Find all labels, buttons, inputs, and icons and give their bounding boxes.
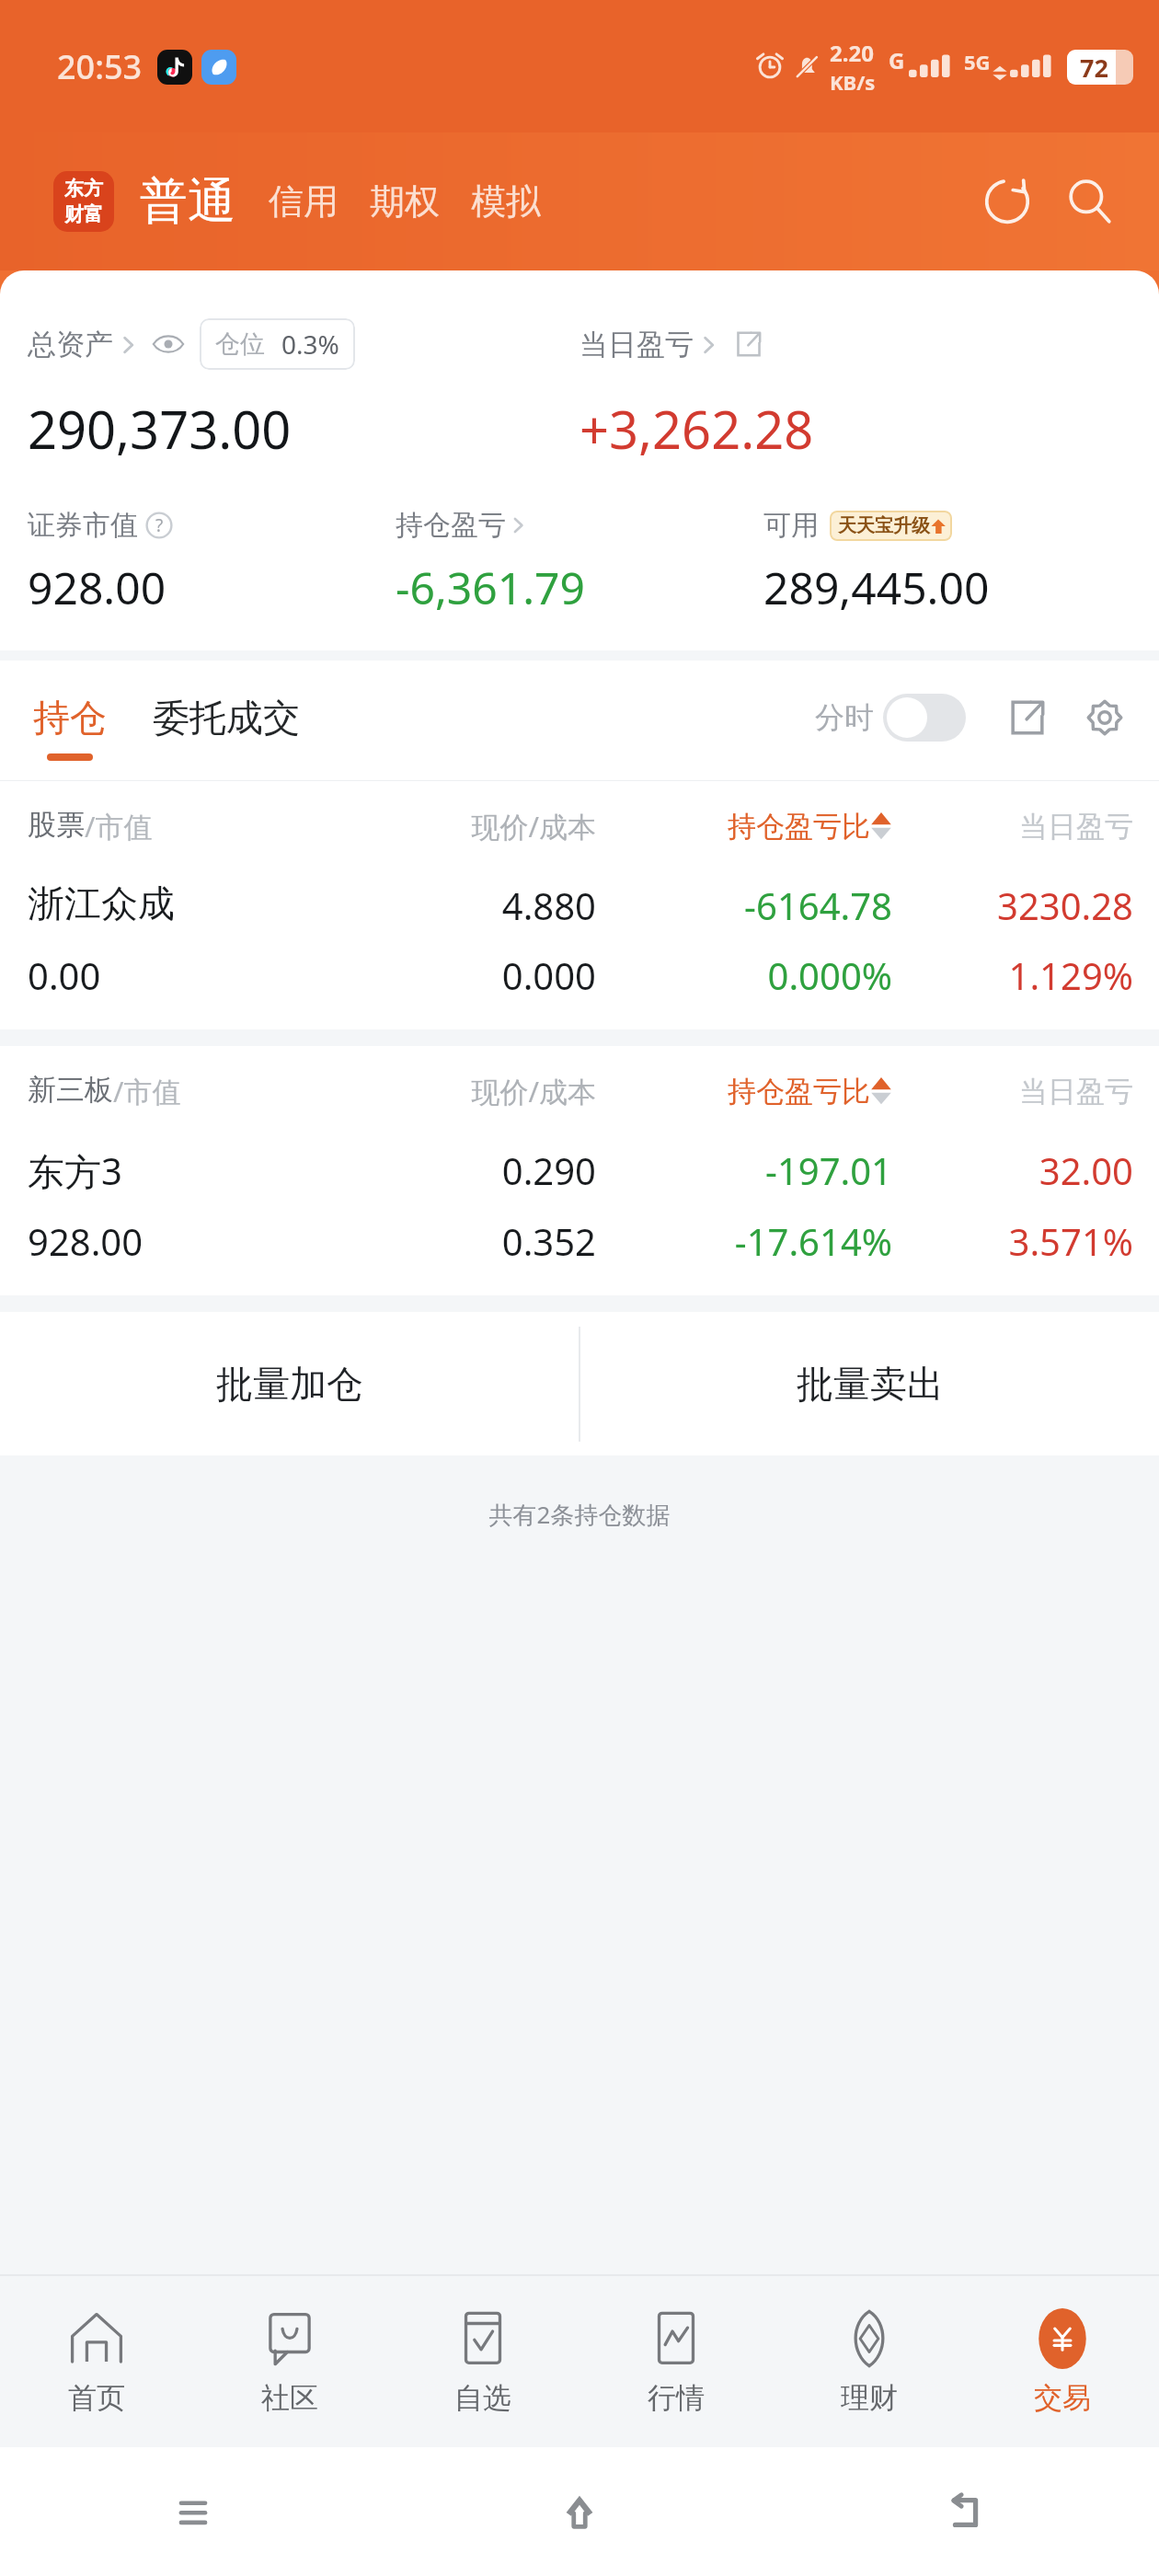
staticText: G — [889, 45, 905, 75]
button[interactable]: 新三板 — [0, 1046, 1159, 1295]
staticText: -6,361.79 — [396, 558, 763, 617]
staticText: 0.290 — [336, 1145, 596, 1195]
button[interactable]: Export — [999, 689, 1056, 746]
staticText: 浙江众成 — [28, 880, 336, 926]
staticText: 928.00 — [28, 558, 396, 617]
staticText: 0.352 — [336, 1216, 596, 1266]
staticText: 0.00 — [28, 950, 336, 1000]
staticText: 0.000 — [336, 950, 596, 1000]
staticText: 3230.28 — [892, 880, 1133, 930]
staticText: 行情 — [648, 2380, 705, 2416]
staticText: 批量加仓 — [216, 1361, 363, 1407]
staticText: 证券市值 — [28, 508, 138, 543]
staticText: 天天宝升级 — [838, 514, 930, 537]
staticText: 委托成交 — [153, 695, 300, 741]
button[interactable]: 股票 — [0, 781, 1159, 1029]
staticText: -17.614% — [596, 1216, 892, 1266]
staticText: 4.880 — [336, 880, 596, 930]
staticText: 3.571% — [892, 1216, 1133, 1266]
button[interactable]: Search — [1054, 166, 1126, 237]
staticText: 5G — [964, 48, 991, 75]
staticText: 2.20 — [830, 38, 874, 68]
button[interactable]: Refresh — [971, 166, 1043, 237]
staticText: 928.00 — [28, 1216, 336, 1266]
staticText: 现价/成本 — [336, 1072, 596, 1110]
staticText: 理财 — [841, 2380, 898, 2416]
staticText: 期权 — [370, 179, 440, 224]
button[interactable]: 行情 — [579, 2276, 773, 2447]
staticText: 股票 — [28, 807, 85, 843]
staticText: 289,445.00 — [763, 558, 1131, 617]
staticText: 分时 — [815, 699, 874, 736]
button[interactable]: 总资产 — [28, 327, 139, 362]
staticText: 东方3 — [28, 1145, 336, 1196]
button[interactable]: Settings — [1076, 689, 1133, 746]
staticText: 财富 — [64, 202, 103, 226]
staticText: 自选 — [454, 2380, 511, 2416]
staticText: 新三板 — [28, 1072, 113, 1108]
staticText: -197.01 — [596, 1145, 892, 1195]
staticText: 东方 — [64, 177, 103, 201]
staticText: 当日盈亏 — [579, 327, 694, 362]
button[interactable]: Home — [386, 2447, 773, 2576]
button[interactable]: Toggle intraday view — [883, 694, 966, 742]
button[interactable]: 当日盈亏 — [579, 327, 719, 362]
staticText: 290,373.00 — [28, 394, 579, 464]
button[interactable]: Toggle visibility — [150, 326, 187, 362]
button[interactable]: 交易 — [966, 2276, 1159, 2447]
staticText: 持仓 — [33, 695, 107, 741]
button[interactable]: 批量加仓 — [0, 1312, 579, 1455]
staticText: 社区 — [261, 2380, 318, 2416]
staticText: 交易 — [1034, 2380, 1091, 2416]
button[interactable]: 天天宝升级 — [830, 511, 952, 541]
staticText: 可用 — [763, 508, 819, 543]
button[interactable]: 仓位 — [200, 318, 355, 370]
button[interactable]: 社区 — [193, 2276, 386, 2447]
button[interactable]: 信用 — [263, 174, 344, 229]
button[interactable]: 持仓 — [28, 661, 112, 780]
staticText: 持仓盈亏 — [396, 508, 506, 543]
button[interactable]: 首页 — [0, 2276, 193, 2447]
staticText: 72 — [1080, 51, 1108, 85]
staticText: 总资产 — [28, 327, 113, 362]
button[interactable]: 模拟 — [465, 174, 546, 229]
staticText: 批量卖出 — [797, 1361, 944, 1407]
staticText: ? — [155, 513, 164, 537]
staticText: -6164.78 — [596, 880, 892, 930]
staticText: +3,262.28 — [579, 394, 1131, 464]
button[interactable]: Open daily P/L detail — [730, 326, 767, 362]
button[interactable]: 自选 — [386, 2276, 579, 2447]
staticText: 现价/成本 — [336, 807, 596, 845]
button[interactable]: 理财 — [773, 2276, 966, 2447]
staticText: KB/s — [830, 68, 876, 96]
staticText: 1.129% — [892, 950, 1133, 1000]
staticText: 共有2条持仓数据 — [0, 1498, 1159, 1531]
staticText: 模拟 — [471, 179, 541, 224]
staticText: 仓位 — [215, 328, 265, 360]
button[interactable]: 期权 — [364, 174, 445, 229]
button[interactable]: 委托成交 — [147, 661, 305, 780]
staticText: 20:53 — [57, 44, 143, 89]
staticText: 持仓盈亏比 — [728, 809, 870, 845]
button[interactable]: Back — [773, 2447, 1159, 2576]
staticText: 信用 — [269, 179, 339, 224]
staticText: 0.3% — [281, 327, 339, 362]
button[interactable]: Recents — [0, 2447, 386, 2576]
staticText: 当日盈亏 — [892, 809, 1133, 845]
staticText: 0.000% — [596, 950, 892, 1000]
staticText: 当日盈亏 — [892, 1074, 1133, 1110]
button[interactable]: 普通 — [136, 167, 239, 236]
staticText: 首页 — [68, 2380, 125, 2416]
staticText: /市值 — [113, 1072, 181, 1110]
staticText: /市值 — [85, 807, 153, 845]
staticText: 32.00 — [892, 1145, 1133, 1195]
button[interactable]: 批量卖出 — [580, 1312, 1159, 1455]
staticText: 普通 — [140, 171, 235, 232]
button[interactable]: 持仓盈亏 — [396, 508, 763, 543]
staticText: 持仓盈亏比 — [728, 1074, 870, 1110]
